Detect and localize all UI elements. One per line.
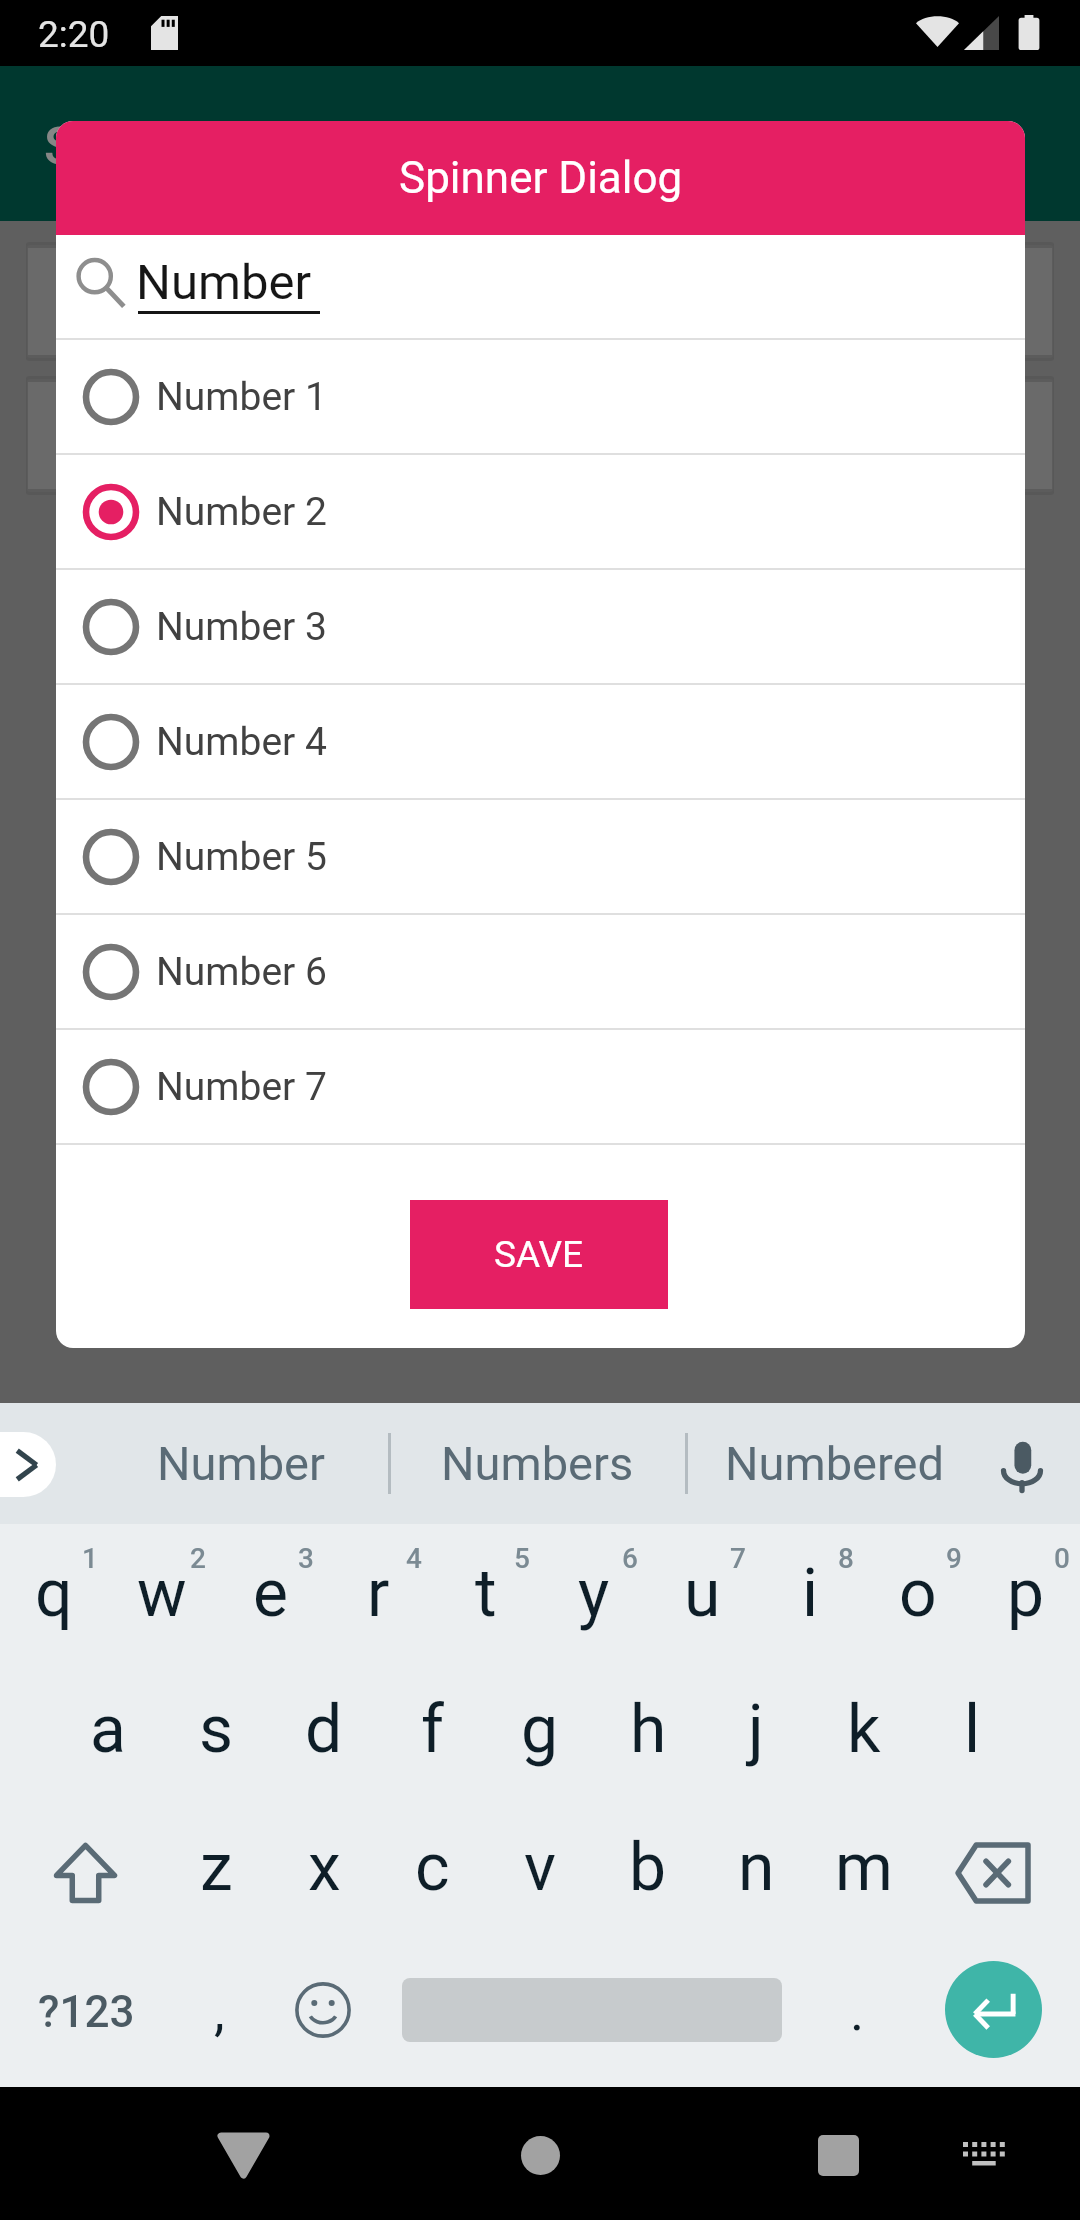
button[interactable]: h (594, 1668, 702, 1805)
staticText: d (305, 1691, 343, 1768)
staticText: Number 7 (156, 1064, 327, 1110)
staticText: w (137, 1555, 187, 1632)
staticText: 5 (514, 1542, 530, 1575)
button[interactable]: Numbers (389, 1403, 686, 1524)
button[interactable]: Number 1 (56, 340, 1025, 453)
staticText: m (835, 1829, 893, 1906)
staticText: o (899, 1555, 937, 1632)
button[interactable]: Number 3 (56, 570, 1025, 683)
staticText: Numbers (441, 1436, 634, 1491)
staticText: n (738, 1829, 775, 1906)
staticText: Number 4 (156, 719, 327, 765)
button[interactable]: z (162, 1806, 270, 1943)
button[interactable]: Space (397, 1941, 787, 2078)
button[interactable]: q (0, 1531, 108, 1668)
button[interactable]: b (594, 1806, 702, 1943)
staticText: i (802, 1555, 819, 1632)
button[interactable]: Number 4 (56, 685, 1025, 798)
button[interactable]: w (108, 1531, 216, 1668)
button[interactable]: m (810, 1806, 918, 1943)
staticText: f (421, 1691, 444, 1768)
staticText: Number (136, 254, 312, 311)
staticText: 1 (82, 1542, 98, 1575)
button[interactable]: Number 6 (56, 915, 1025, 1028)
button[interactable]: Home (480, 2095, 600, 2215)
button[interactable]: u (648, 1531, 756, 1668)
button[interactable]: Back (183, 2095, 303, 2215)
staticText: b (629, 1829, 667, 1906)
button[interactable]: x (270, 1806, 378, 1943)
button[interactable]: Enter (923, 1941, 1063, 2078)
staticText: Number 6 (156, 949, 327, 995)
staticText: Number (157, 1436, 325, 1491)
staticText: z (200, 1829, 233, 1906)
staticText: a (90, 1691, 126, 1768)
staticText: Number 1 (156, 374, 327, 420)
staticText: p (1007, 1555, 1045, 1632)
button[interactable]: n (702, 1806, 810, 1943)
staticText: Spinner Dialog (399, 152, 683, 204)
button[interactable]: Number 7 (56, 1030, 1025, 1143)
button[interactable]: . (803, 1941, 911, 2078)
staticText: u (684, 1555, 721, 1632)
staticText: r (367, 1555, 390, 1632)
staticText: v (524, 1829, 556, 1906)
staticText: g (521, 1691, 559, 1768)
staticText: 2 (190, 1542, 206, 1575)
staticText: 8 (838, 1542, 854, 1575)
staticText: ?123 (38, 1986, 135, 2038)
button[interactable]: j (702, 1668, 810, 1805)
button[interactable]: Number 5 (56, 800, 1025, 913)
button[interactable]: ?123 (5, 1941, 167, 2078)
staticText: Number 5 (156, 834, 327, 880)
button[interactable]: v (486, 1806, 594, 1943)
staticText: q (35, 1555, 73, 1632)
staticText: e (253, 1555, 288, 1632)
button[interactable]: i (756, 1531, 864, 1668)
button[interactable]: Voice input (962, 1403, 1080, 1524)
button[interactable]: p (972, 1531, 1080, 1668)
button[interactable]: l (918, 1668, 1026, 1805)
button[interactable]: f (378, 1668, 486, 1805)
staticText: y (578, 1555, 610, 1632)
button[interactable]: Shift (4, 1806, 166, 1943)
staticText: Number 3 (156, 604, 327, 650)
button[interactable]: SAVE (410, 1200, 668, 1309)
staticText: s (199, 1691, 234, 1768)
button[interactable]: g (486, 1668, 594, 1805)
button[interactable]: Expand suggestions (0, 1432, 56, 1497)
button[interactable]: k (810, 1668, 918, 1805)
button[interactable]: o (864, 1531, 972, 1668)
button[interactable]: c (378, 1806, 486, 1943)
staticText: SAVE (494, 1233, 584, 1276)
button[interactable]: Numbered (686, 1403, 983, 1524)
staticText: k (847, 1691, 881, 1768)
button[interactable]: Switch keyboard (922, 2095, 1042, 2215)
button[interactable]: Recents (778, 2095, 898, 2215)
staticText: 3 (298, 1542, 314, 1575)
button[interactable]: , (165, 1941, 273, 2078)
button[interactable]: d (270, 1668, 378, 1805)
staticText: j (748, 1691, 764, 1768)
staticText: 7 (730, 1542, 746, 1575)
staticText: 0 (1054, 1542, 1070, 1575)
button[interactable]: r (324, 1531, 432, 1668)
button[interactable]: e (216, 1531, 324, 1668)
button[interactable]: Backspace (912, 1806, 1074, 1943)
staticText: h (630, 1691, 667, 1768)
staticText: . (850, 1980, 865, 2043)
button[interactable]: s (162, 1668, 270, 1805)
button[interactable]: Number 2 (56, 455, 1025, 568)
staticText: , (214, 1980, 225, 2043)
staticText: l (964, 1691, 981, 1768)
staticText: Spinner (44, 116, 223, 177)
button[interactable]: y (540, 1531, 648, 1668)
button[interactable]: a (54, 1668, 162, 1805)
button[interactable]: Emoji (269, 1941, 377, 2078)
staticText: 2:20 (38, 13, 110, 56)
button[interactable]: Number (92, 1403, 389, 1524)
button[interactable]: t (432, 1531, 540, 1668)
staticText: 6 (622, 1542, 638, 1575)
staticText: c (415, 1829, 450, 1906)
staticText: Numbered (725, 1436, 944, 1491)
